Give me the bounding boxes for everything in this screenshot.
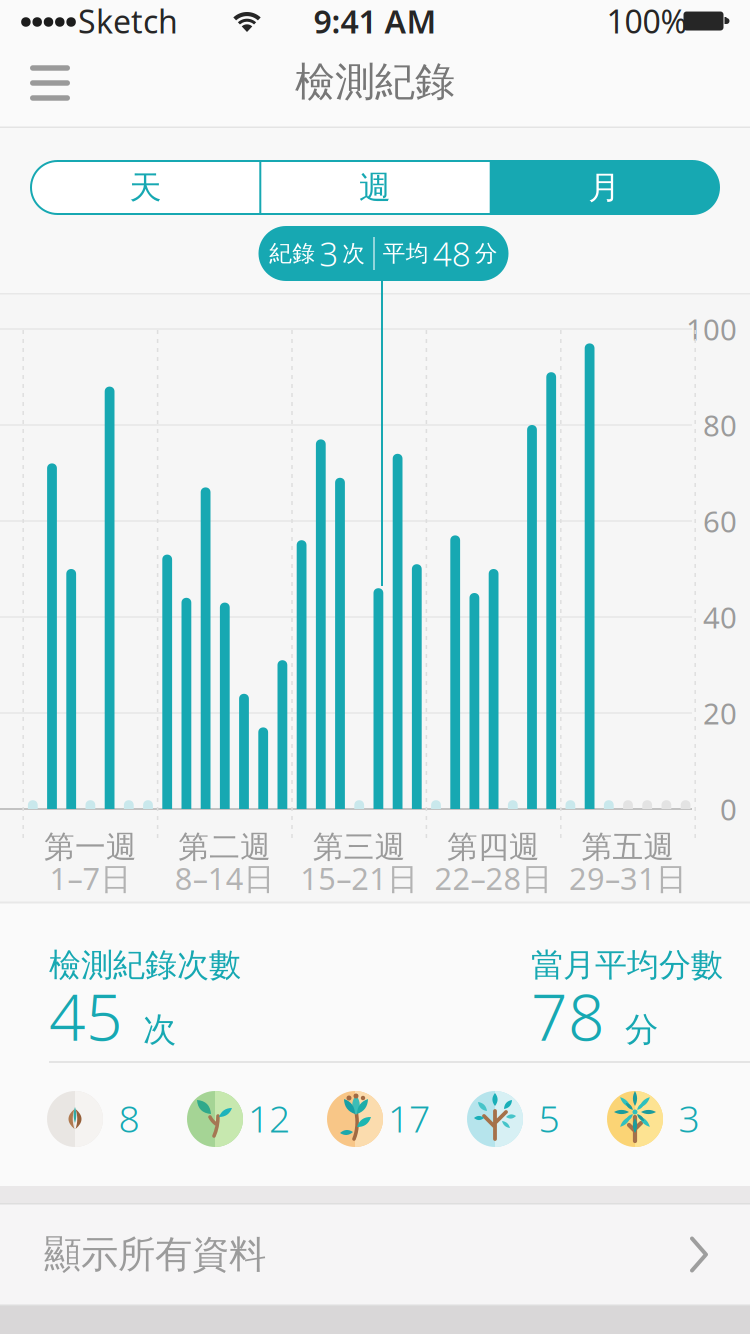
staticText: 60	[703, 501, 737, 540]
staticText: 第一週	[44, 828, 137, 866]
staticText: 78	[531, 973, 605, 1058]
staticText: 20	[703, 693, 737, 732]
staticText: 分	[625, 1009, 658, 1050]
staticText: 次	[143, 1009, 176, 1050]
staticText: 第三週	[313, 828, 406, 866]
staticText: 40	[703, 597, 737, 636]
staticText: 第二週	[178, 828, 271, 866]
staticText: 17	[388, 1093, 430, 1143]
staticText: 29–31日	[569, 858, 687, 898]
button[interactable]: 週	[260, 161, 489, 214]
staticText: 平均	[383, 240, 429, 267]
staticText: 分	[475, 240, 498, 267]
staticText: 8	[118, 1093, 139, 1143]
staticText: 22–28日	[435, 858, 553, 898]
staticText: 月	[588, 168, 620, 207]
button[interactable]: 顯示所有資料	[0, 1204, 750, 1305]
staticText: 週	[359, 168, 391, 207]
staticText: 3	[319, 231, 338, 276]
staticText: 5	[538, 1093, 559, 1143]
staticText: 0	[720, 789, 737, 828]
staticText: 當月平均分數	[531, 945, 723, 985]
staticText: 45	[49, 973, 123, 1058]
button[interactable]: Menu	[22, 55, 78, 111]
staticText: 天	[130, 168, 162, 207]
staticText: 12	[248, 1093, 290, 1143]
staticText: 第四週	[447, 828, 540, 866]
button[interactable]: 月	[490, 161, 719, 214]
staticText: 9:41 AM	[313, 0, 436, 42]
staticText: 3	[678, 1093, 699, 1143]
staticText: 48	[433, 231, 471, 276]
staticText: 100	[686, 309, 737, 348]
staticText: 檢測紀錄次數	[49, 945, 241, 985]
staticText: 1–7日	[49, 858, 131, 898]
staticText: 紀錄	[269, 240, 315, 267]
staticText: 15–21日	[300, 858, 418, 898]
staticText: 顯示所有資料	[44, 1232, 266, 1277]
button[interactable]: 天	[31, 161, 260, 214]
staticText: 100%	[606, 0, 687, 42]
staticText: 檢測紀錄	[295, 57, 455, 106]
staticText: Sketch	[78, 0, 178, 42]
staticText: 第五週	[581, 828, 674, 866]
staticText: 8–14日	[175, 858, 275, 898]
staticText: 次	[342, 240, 365, 267]
staticText: 80	[703, 405, 737, 444]
